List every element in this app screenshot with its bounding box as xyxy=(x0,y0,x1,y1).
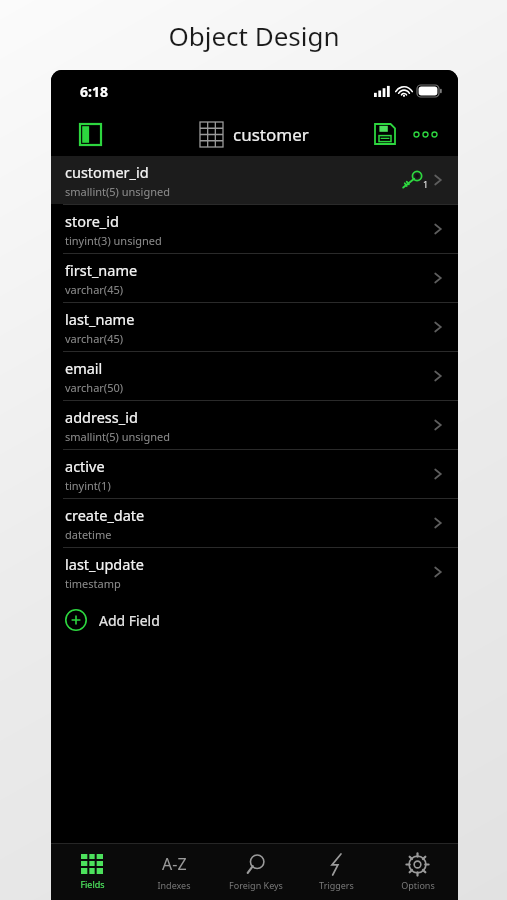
staticText: customer_id xyxy=(65,162,149,182)
button[interactable]: active xyxy=(51,450,458,498)
staticText: smallint(5) unsigned xyxy=(65,429,170,444)
staticText: first_name xyxy=(65,260,138,280)
staticText: Object Design xyxy=(168,18,340,53)
staticText: customer xyxy=(233,123,309,146)
button[interactable]: Fields xyxy=(51,844,133,900)
button[interactable]: Options xyxy=(377,844,458,900)
staticText: smallint(5) unsigned xyxy=(65,184,170,199)
staticText: Add Field xyxy=(99,611,160,630)
button[interactable]: email xyxy=(51,352,458,400)
staticText: tinyint(1) xyxy=(65,478,111,493)
staticText: last_name xyxy=(65,309,135,329)
staticText: varchar(50) xyxy=(65,380,124,395)
button[interactable]: Save xyxy=(368,117,402,151)
staticText: Fields xyxy=(80,878,105,890)
staticText: timestamp xyxy=(65,576,121,591)
staticText: varchar(45) xyxy=(65,282,124,297)
button[interactable]: Add Field xyxy=(51,596,458,644)
staticText: 1 xyxy=(423,178,429,190)
staticText: datetime xyxy=(65,527,112,542)
staticText: active xyxy=(65,456,105,476)
staticText: Indexes xyxy=(157,879,191,891)
staticText: email xyxy=(65,358,103,378)
staticText: tinyint(3) unsigned xyxy=(65,233,162,248)
button[interactable]: customer_id xyxy=(51,156,458,204)
button[interactable]: customer xyxy=(200,122,309,147)
staticText: Triggers xyxy=(319,879,354,891)
button[interactable]: A-Z xyxy=(133,844,215,900)
button[interactable]: Triggers xyxy=(296,844,377,900)
button[interactable]: Toggle sidebar xyxy=(73,117,107,151)
staticText: address_id xyxy=(65,407,138,427)
button[interactable]: last_update xyxy=(51,548,458,596)
staticText: Options xyxy=(401,879,435,891)
staticText: varchar(45) xyxy=(65,331,124,346)
staticText: 6:18 xyxy=(80,82,108,101)
staticText: last_update xyxy=(65,554,144,574)
button[interactable]: Foreign Keys xyxy=(215,844,296,900)
staticText: create_date xyxy=(65,505,145,525)
staticText: store_id xyxy=(65,211,119,231)
button[interactable]: More options xyxy=(408,117,442,151)
button[interactable]: create_date xyxy=(51,499,458,547)
button[interactable]: address_id xyxy=(51,401,458,449)
staticText: Foreign Keys xyxy=(229,879,283,891)
button[interactable]: first_name xyxy=(51,254,458,302)
button[interactable]: store_id xyxy=(51,205,458,253)
button[interactable]: last_name xyxy=(51,303,458,351)
staticText: A-Z xyxy=(162,853,187,875)
